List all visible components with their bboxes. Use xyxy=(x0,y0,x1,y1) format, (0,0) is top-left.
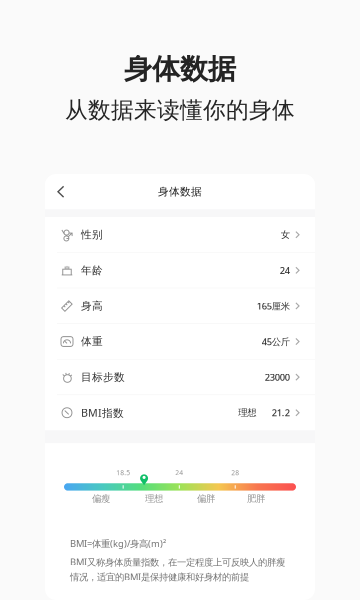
staticText: 年龄 xyxy=(81,264,103,277)
staticText: 性别 xyxy=(81,228,103,241)
staticText: BMI指数 xyxy=(81,406,124,420)
button[interactable]: 身高 xyxy=(45,288,315,323)
button[interactable]: 性别 xyxy=(45,217,315,252)
button[interactable]: 体重 xyxy=(45,324,315,359)
staticText: 理想 xyxy=(238,407,256,418)
staticText: 目标步数 xyxy=(81,371,125,384)
staticText: 23000 xyxy=(265,371,290,383)
staticText: BMI=体重(kg)/身高(m)² xyxy=(70,537,166,550)
staticText: 从数据来读懂你的身体 xyxy=(65,96,295,124)
button[interactable]: 年龄 xyxy=(45,253,315,288)
staticText: 理想 xyxy=(145,493,163,504)
staticText: 体重 xyxy=(81,335,103,348)
button[interactable]: Back xyxy=(45,174,75,209)
staticText: 45公斤 xyxy=(262,335,290,348)
staticText: 偏胖 xyxy=(197,493,215,504)
staticText: 身体数据 xyxy=(158,185,202,198)
staticText: 偏瘦 xyxy=(92,493,110,504)
staticText: 28 xyxy=(231,468,239,477)
staticText: 24 xyxy=(175,468,183,477)
staticText: BMI又称身体质量指数，在一定程度上可反映人的胖瘦情况，适宜的BMI是保持健康和… xyxy=(70,556,285,583)
staticText: 女 xyxy=(281,229,290,240)
staticText: 身体数据 xyxy=(124,52,236,86)
staticText: 18.5 xyxy=(116,468,130,477)
staticText: 21.2 xyxy=(272,406,290,419)
button[interactable]: BMI指数 xyxy=(45,395,315,430)
staticText: 肥胖 xyxy=(247,493,265,504)
staticText: 165厘米 xyxy=(257,300,290,312)
staticText: 身高 xyxy=(81,299,103,312)
staticText: 24 xyxy=(280,264,290,276)
button[interactable]: 目标步数 xyxy=(45,360,315,395)
